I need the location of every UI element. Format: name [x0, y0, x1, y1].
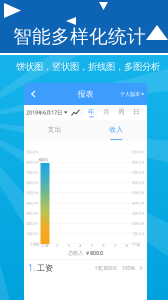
staticText: 400.0￥ — [132, 200, 145, 206]
staticText: 1笔 800.0 — [94, 264, 116, 272]
button[interactable]: 月 — [99, 105, 114, 120]
staticText: 2019年6月17日 — [26, 109, 62, 116]
staticText: 工资 — [35, 263, 53, 273]
staticText: 0.0 — [34, 242, 39, 247]
staticText: 400.0￥ — [26, 200, 39, 206]
staticText: 4 — [79, 243, 81, 248]
staticText: 600.0￥ — [132, 180, 145, 185]
staticText: 700.0￥ — [26, 170, 39, 175]
button[interactable]: 年 — [84, 105, 99, 120]
button[interactable]: 收入 — [85, 120, 147, 141]
staticText: 800.0 — [38, 157, 47, 162]
staticText: 个人版本 — [120, 91, 140, 98]
staticText: 2 — [56, 243, 58, 248]
button[interactable]: 1. — [24, 259, 147, 276]
staticText: 700.0￥ — [132, 170, 145, 175]
staticText: 500.0￥ — [132, 190, 145, 195]
staticText: 收入 — [109, 125, 123, 134]
staticText: ￥800.0 — [85, 249, 103, 256]
staticText: 800.0￥ — [132, 159, 145, 165]
staticText: 100.0￥ — [26, 231, 39, 236]
staticText: 饼状图，竖状图，折线图，多图分析 — [16, 61, 160, 72]
button[interactable]: 周 — [114, 105, 129, 120]
staticText: 7 — [114, 243, 116, 248]
button[interactable]: 2019年6月17日 — [24, 105, 71, 120]
button[interactable]: Chart type — [68, 105, 83, 120]
button[interactable]: 支出 — [24, 120, 85, 141]
staticText: 300.0￥ — [132, 210, 145, 216]
staticText: 300.0￥ — [26, 210, 39, 216]
staticText: 600.0￥ — [26, 180, 39, 185]
staticText: 900.0￥ — [26, 149, 39, 155]
staticText: 100.0￥ — [132, 231, 145, 236]
staticText: 年 — [88, 108, 95, 116]
staticText: 日 — [133, 108, 140, 116]
staticText: 1. — [28, 263, 35, 273]
staticText: 智能多样化统计 — [13, 25, 146, 48]
staticText: 9 — [137, 243, 139, 248]
button[interactable]: Back — [24, 83, 45, 105]
button[interactable]: 个人版本 — [114, 83, 148, 106]
staticText: 周 — [118, 108, 125, 116]
staticText: 0.0￥ — [132, 241, 141, 246]
staticText: 500.0￥ — [26, 190, 39, 195]
staticText: 报表 — [77, 89, 93, 99]
staticText: 总收入 — [68, 250, 83, 256]
staticText: 200.0￥ — [132, 221, 145, 226]
staticText: 5 — [91, 243, 93, 248]
staticText: 8 — [125, 243, 127, 248]
staticText: 900.0￥ — [132, 149, 145, 155]
staticText: 200.0￥ — [26, 221, 39, 226]
staticText: 3 — [67, 243, 69, 248]
staticText: 支出 — [48, 125, 62, 134]
staticText: 0.0￥ — [30, 241, 39, 246]
staticText: 800.0￥ — [26, 159, 39, 165]
staticText: 月 — [103, 108, 110, 116]
staticText: 工资 — [41, 243, 49, 248]
button[interactable]: 日 — [129, 105, 144, 120]
staticText: 100% — [121, 264, 134, 272]
staticText: 6 — [102, 243, 104, 248]
